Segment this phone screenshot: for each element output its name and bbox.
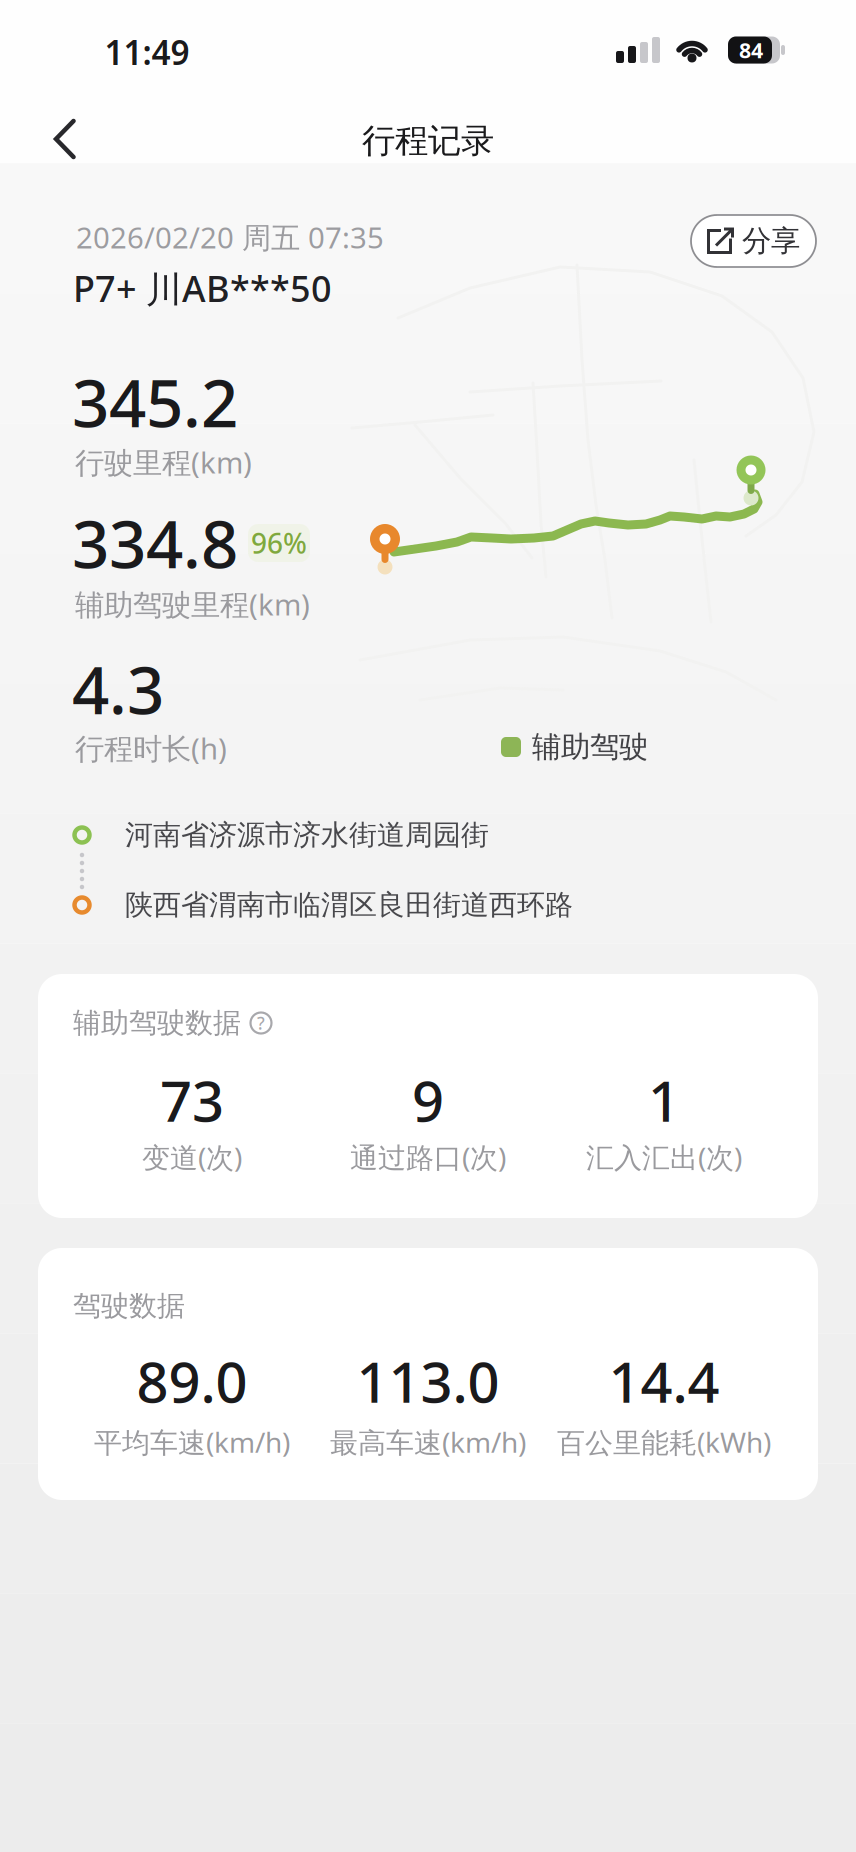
staticText: 334.8: [72, 500, 238, 586]
staticText: 分享: [742, 223, 800, 259]
staticText: 汇入汇出(次): [586, 1138, 742, 1176]
staticText: 变道(次): [142, 1138, 242, 1176]
staticText: 行驶里程(km): [75, 442, 252, 481]
staticText: 84: [739, 36, 763, 64]
staticText: 行程记录: [362, 120, 494, 161]
staticText: 113.0: [356, 1344, 499, 1418]
staticText: 96%: [251, 524, 307, 562]
button[interactable]: [54, 121, 75, 157]
staticText: 驾驶数据: [73, 1289, 185, 1323]
staticText: 4.3: [72, 646, 164, 732]
staticText: P7+ 川AB***50: [73, 264, 332, 312]
staticText: ?: [257, 1011, 265, 1034]
staticText: 辅助驾驶: [532, 729, 648, 765]
staticText: 89.0: [136, 1344, 247, 1418]
staticText: 2026/02/20 周五 07:35: [76, 217, 384, 256]
staticText: 通过路口(次): [350, 1138, 506, 1176]
staticText: 河南省济源市济水街道周园街: [125, 818, 489, 852]
staticText: 平均车速(km/h): [94, 1423, 290, 1461]
button[interactable]: ?: [249, 1011, 273, 1035]
staticText: 百公里能耗(kWh): [557, 1423, 771, 1461]
staticText: 9: [412, 1063, 444, 1137]
staticText: 14.4: [608, 1344, 719, 1418]
staticText: 73: [160, 1063, 224, 1137]
staticText: 1: [648, 1063, 680, 1137]
staticText: 345.2: [72, 359, 238, 445]
staticText: 11:49: [104, 30, 189, 74]
button[interactable]: 分享: [691, 215, 816, 267]
staticText: 辅助驾驶数据: [73, 1006, 241, 1040]
staticText: 辅助驾驶里程(km): [75, 584, 310, 623]
staticText: 行程时长(h): [75, 728, 227, 767]
staticText: 陕西省渭南市临渭区良田街道西环路: [125, 888, 573, 922]
staticText: 最高车速(km/h): [330, 1423, 526, 1461]
